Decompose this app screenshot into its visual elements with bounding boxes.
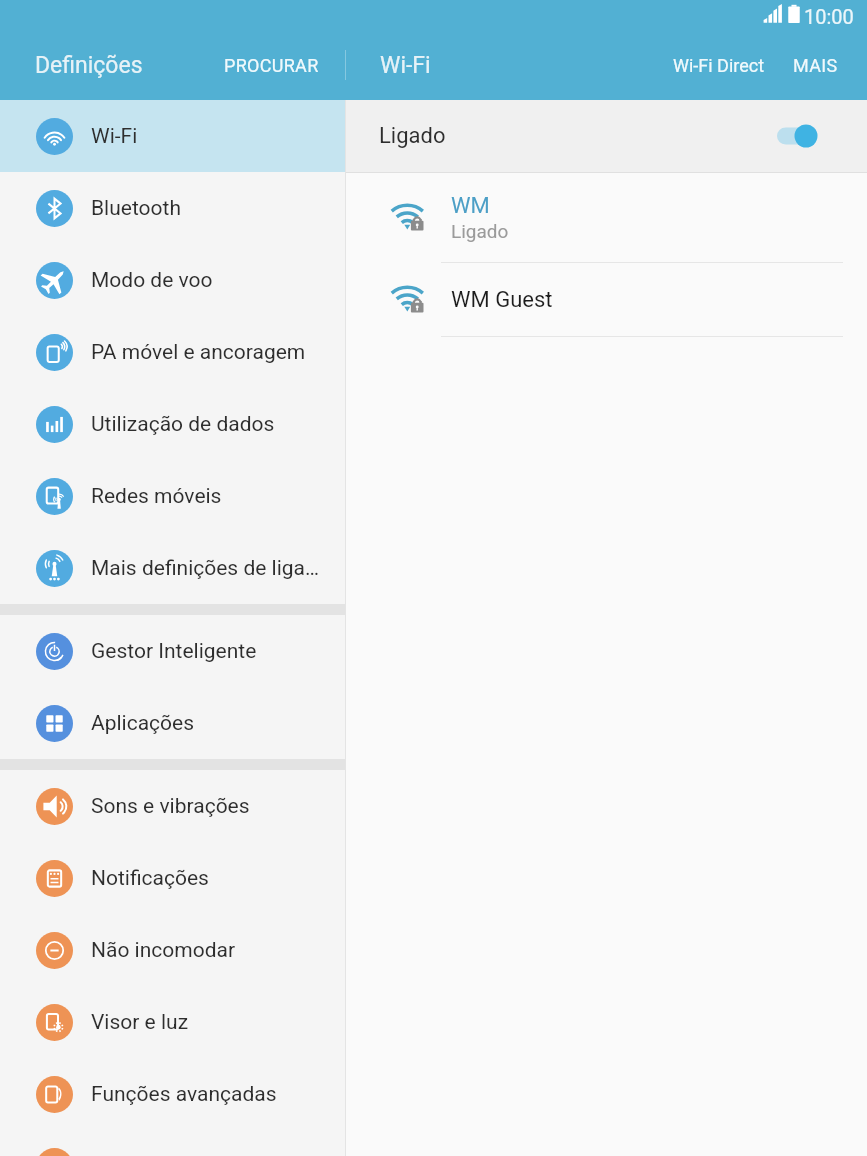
staticText: Funções avançadas — [91, 1082, 277, 1107]
staticText: Modo de voo — [91, 268, 213, 293]
button[interactable]: Gestor Inteligente — [0, 615, 345, 687]
staticText: WM — [451, 193, 490, 219]
button[interactable]: WM Guest — [346, 263, 867, 337]
button[interactable]: Visor e luz — [0, 986, 345, 1058]
button[interactable]: Funções avançadas — [0, 1058, 345, 1130]
staticText: Definições — [35, 52, 143, 79]
staticText: Aplicações — [91, 711, 195, 736]
staticText: MAIS — [793, 55, 838, 76]
staticText: PA móvel e ancoragem — [91, 340, 306, 365]
button[interactable]: MAIS — [785, 45, 846, 86]
staticText: Ligado — [379, 123, 446, 149]
button[interactable]: Não incomodar — [0, 914, 345, 986]
staticText: Gestor Inteligente — [91, 639, 257, 664]
staticText: Ligado — [451, 220, 509, 242]
staticText: Wi-Fi — [380, 52, 431, 79]
button[interactable]: WM — [346, 173, 867, 263]
button[interactable]: Modo de voo — [0, 244, 345, 316]
staticText: Utilização de dados — [91, 412, 275, 437]
staticText: Redes móveis — [91, 484, 222, 509]
staticText: Mais definições de liga… — [91, 556, 320, 581]
button[interactable]: Fundo — [0, 1130, 345, 1156]
staticText: Não incomodar — [91, 938, 236, 963]
button[interactable]: Mais definições de liga… — [0, 532, 345, 604]
staticText: Sons e vibrações — [91, 794, 250, 819]
staticText: Bluetooth — [91, 196, 181, 221]
staticText: Wi-Fi — [91, 124, 138, 149]
staticText: Notificações — [91, 866, 209, 891]
button[interactable]: Redes móveis — [0, 460, 345, 532]
button[interactable]: PROCURAR — [216, 45, 327, 86]
button[interactable]: PA móvel e ancoragem — [0, 316, 345, 388]
staticText: WM Guest — [451, 287, 553, 313]
staticText: Visor e luz — [91, 1010, 189, 1035]
button[interactable]: Wi-Fi Direct — [665, 45, 773, 86]
button[interactable]: Utilização de dados — [0, 388, 345, 460]
button[interactable]: Bluetooth — [0, 172, 345, 244]
button[interactable]: Notificações — [0, 842, 345, 914]
button[interactable]: Wi-Fi toggle — [774, 114, 838, 158]
staticText: Wi-Fi Direct — [673, 55, 765, 76]
staticText: PROCURAR — [224, 55, 319, 76]
button[interactable]: Wi-Fi — [0, 100, 345, 172]
button[interactable]: Aplicações — [0, 687, 345, 759]
staticText: 10:00 — [804, 5, 854, 28]
button[interactable]: Sons e vibrações — [0, 770, 345, 842]
button[interactable]: Ligado — [346, 100, 867, 172]
